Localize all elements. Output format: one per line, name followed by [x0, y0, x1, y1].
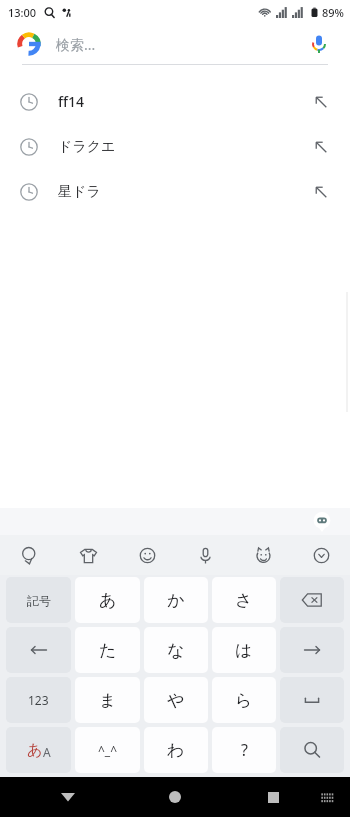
button[interactable]: さ [212, 577, 276, 623]
button[interactable]: search [280, 727, 344, 773]
staticText: や [167, 690, 185, 711]
staticText: ら [235, 690, 253, 711]
staticText: か [167, 590, 185, 611]
button[interactable]: た [75, 627, 140, 673]
button[interactable]: ら [212, 677, 276, 723]
button[interactable]: や [144, 677, 208, 723]
button[interactable]: ^_^ [75, 727, 140, 773]
button[interactable]: な [144, 627, 208, 673]
staticText: 13:00 [8, 5, 37, 20]
button[interactable]: か [144, 577, 208, 623]
button[interactable]: Insert query ドラクエ [308, 134, 334, 160]
button[interactable]: Insert query 星ドラ [308, 179, 334, 205]
button[interactable]: right [280, 627, 344, 673]
button[interactable]: backspace [280, 577, 344, 623]
staticText: た [99, 640, 117, 661]
staticText: あ [27, 741, 43, 760]
staticText: あ [99, 590, 117, 611]
staticText: 検索... [56, 35, 96, 54]
button[interactable]: 記号 [6, 577, 71, 623]
button[interactable]: Insert query ff14 [308, 89, 334, 115]
staticText: 記号 [27, 593, 51, 608]
staticText: ff14 [58, 92, 84, 111]
button[interactable]: Assistant [312, 512, 332, 532]
button[interactable]: あ [6, 727, 71, 773]
button[interactable]: Emoticons [234, 535, 292, 575]
button[interactable]: わ [144, 727, 208, 773]
button[interactable]: 星ドラ [0, 169, 350, 214]
staticText: A [43, 744, 51, 760]
staticText: さ [235, 590, 253, 611]
staticText: ま [99, 690, 117, 711]
staticText: は [235, 640, 253, 661]
staticText: ? [241, 739, 248, 761]
staticText: わ [167, 740, 185, 761]
button[interactable]: Voice search [306, 31, 332, 57]
staticText: ^_^ [98, 742, 118, 758]
staticText: 123 [28, 692, 49, 708]
button[interactable]: Emoji [118, 535, 176, 575]
button[interactable]: ドラクエ [0, 124, 350, 169]
staticText: な [167, 640, 185, 661]
staticText: 星ドラ [58, 183, 101, 201]
button[interactable]: あ [75, 577, 140, 623]
button[interactable]: Search [0, 535, 59, 575]
button[interactable]: punct [212, 727, 276, 773]
button[interactable]: は [212, 627, 276, 673]
button[interactable]: Voice input [176, 535, 234, 575]
button[interactable]: 123 [6, 677, 71, 723]
button[interactable]: Switch keyboard [310, 780, 344, 814]
button[interactable]: left [6, 627, 71, 673]
button[interactable]: ま [75, 677, 140, 723]
staticText: 89% [322, 5, 344, 20]
button[interactable]: space [280, 677, 344, 723]
button[interactable]: Back [48, 777, 88, 817]
button[interactable]: Expand [292, 535, 350, 575]
button[interactable]: Recents [253, 777, 293, 817]
button[interactable]: 検索... [0, 24, 350, 64]
button[interactable]: ff14 [0, 79, 350, 124]
button[interactable]: Stickers [59, 535, 118, 575]
button[interactable]: Home [155, 777, 195, 817]
staticText: ドラクエ [58, 138, 116, 156]
